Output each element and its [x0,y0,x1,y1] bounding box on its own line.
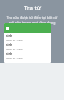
staticText: danh từ - verb [6,38,23,41]
staticText: Tra từ [24,4,41,12]
staticText: sinh [6,52,13,56]
staticText: sinh [6,34,13,38]
staticText: Tra cứu được từ điển tại bất cứ nơi nào … [4,15,60,25]
staticText: danh từ - verb [6,47,23,50]
staticText: danh từ - verb [6,56,23,59]
staticText: sinh [6,43,13,47]
